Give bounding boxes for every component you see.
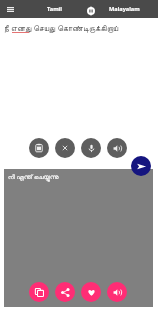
staticText: Malayalam <box>109 5 140 13</box>
button[interactable]: Translate <box>131 156 151 176</box>
button[interactable]: Copy translation <box>29 282 49 302</box>
staticText: நீ எனது செயது கொண்டிருக்கிறாய் <box>4 22 119 33</box>
button[interactable]: Voice input <box>81 138 101 158</box>
button[interactable]: Open navigation menu <box>2 2 18 16</box>
button[interactable]: Listen <box>107 138 127 158</box>
button[interactable]: Add to favourites <box>81 282 101 302</box>
staticText: നീ എന്ത് ചെയ്യുന്നു <box>8 172 59 180</box>
button[interactable]: Listen <box>107 282 127 302</box>
button[interactable]: Swap languages <box>84 4 98 18</box>
button[interactable]: Malayalam <box>100 0 148 18</box>
staticText: Tamil <box>47 5 62 13</box>
button[interactable]: Clear text <box>55 138 75 158</box>
button[interactable]: Tamil <box>32 0 76 18</box>
button[interactable]: Share <box>55 282 75 302</box>
button[interactable]: Paste <box>29 138 49 158</box>
